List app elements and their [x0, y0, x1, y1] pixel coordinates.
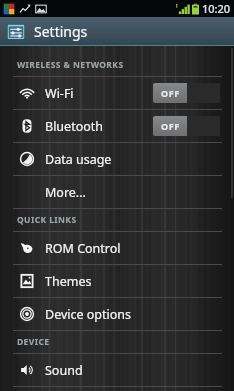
staticText: QUICK LINKS — [17, 214, 77, 226]
staticText: Bluetooth — [45, 118, 104, 135]
button[interactable]: ROM Control — [0, 232, 234, 265]
button[interactable]: Bluetooth — [0, 110, 234, 143]
button[interactable]: Sound — [0, 354, 234, 387]
button[interactable]: Toggle off — [153, 83, 220, 103]
button[interactable]: Device options — [0, 298, 234, 331]
button[interactable]: Toggle off — [153, 116, 220, 136]
staticText: Settings — [34, 22, 88, 41]
staticText: Sound — [45, 362, 83, 379]
staticText: OFF — [161, 120, 180, 132]
staticText: OFF — [161, 87, 180, 99]
staticText: Wi-Fi — [45, 85, 74, 102]
staticText: Data usage — [45, 151, 112, 168]
staticText: WIRELESS & NETWORKS — [17, 59, 124, 71]
staticText: ROM Control — [45, 240, 121, 257]
button[interactable]: Themes — [0, 265, 234, 298]
staticText: Device options — [45, 306, 132, 323]
staticText: DEVICE — [17, 336, 50, 348]
staticText: 10:20 — [202, 1, 231, 16]
staticText: Themes — [45, 273, 92, 290]
button[interactable]: More... — [0, 176, 234, 209]
button[interactable]: Settings home — [7, 22, 88, 41]
button[interactable]: Data usage — [0, 143, 234, 176]
staticText: More... — [45, 184, 86, 201]
button[interactable]: Wi-Fi — [0, 77, 234, 110]
